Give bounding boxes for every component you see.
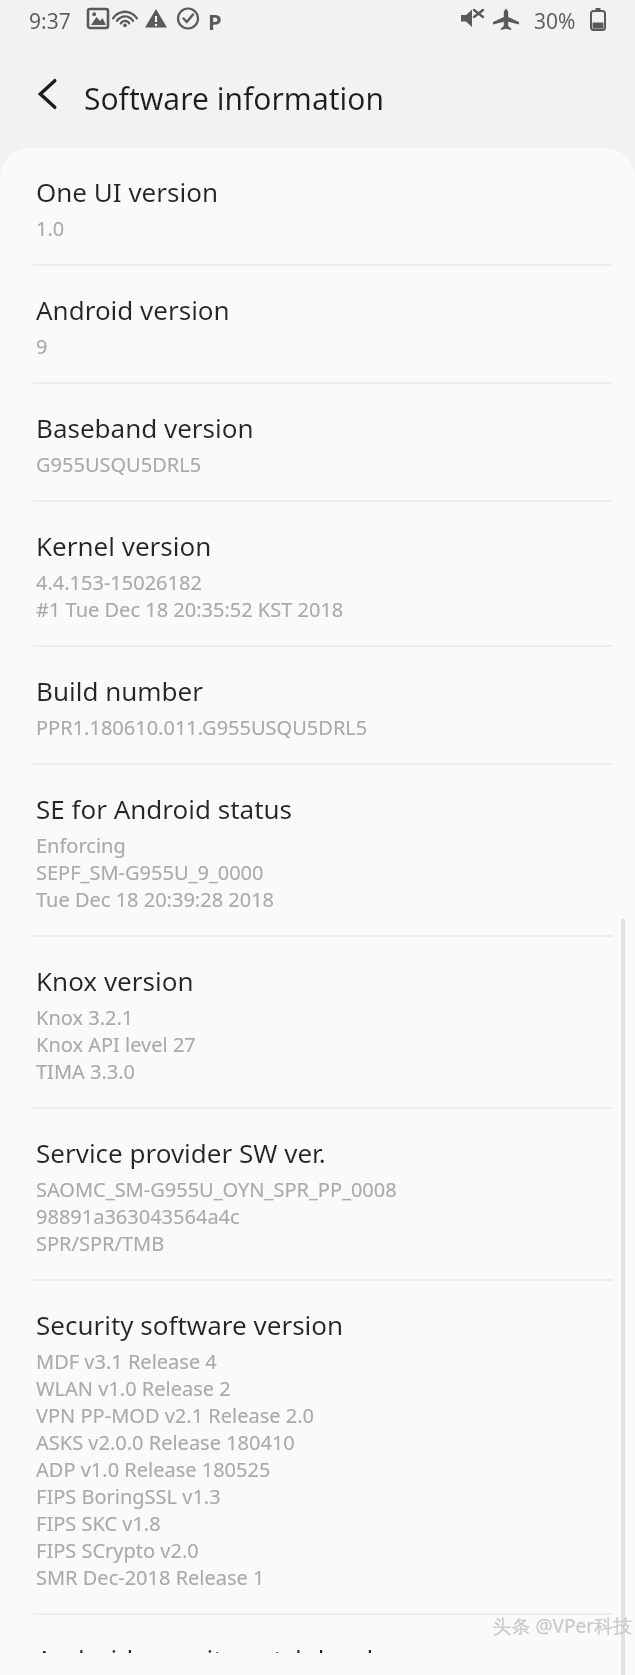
staticText: Baseband version	[36, 410, 254, 445]
staticText: TIMA 3.3.0	[36, 1058, 136, 1085]
staticText: 头条 @VPer科技	[492, 1613, 632, 1639]
staticText: Tue Dec 18 20:39:28 2018	[36, 886, 275, 913]
staticText: SPR/SPR/TMB	[36, 1230, 165, 1257]
staticText: FIPS SKC v1.8	[36, 1510, 161, 1537]
staticText: 9:37	[29, 7, 71, 36]
button[interactable]: Back	[20, 65, 78, 123]
button[interactable]: Kernel version	[0, 502, 635, 645]
staticText: 30%	[534, 7, 576, 36]
button[interactable]: Baseband version	[0, 384, 635, 500]
staticText: SAOMC_SM-G955U_OYN_SPR_PP_0008	[36, 1176, 397, 1203]
staticText: Knox API level 27	[36, 1031, 196, 1058]
staticText: One UI version	[36, 174, 218, 209]
button[interactable]: Build number	[0, 647, 635, 763]
staticText: PPR1.180610.011.G955USQU5DRL5	[36, 714, 368, 741]
staticText: Kernel version	[36, 528, 212, 563]
staticText: P	[208, 6, 222, 36]
staticText: WLAN v1.0 Release 2	[36, 1375, 231, 1402]
button[interactable]: SE for Android status	[0, 765, 635, 935]
staticText: ADP v1.0 Release 180525	[36, 1456, 271, 1483]
button[interactable]: Knox version	[0, 937, 635, 1107]
staticText: 4.4.153-15026182	[36, 569, 202, 596]
staticText: ASKS v2.0.0 Release 180410	[36, 1429, 295, 1456]
staticText: SE for Android status	[36, 791, 293, 826]
staticText: Android security patch level	[36, 1641, 374, 1653]
staticText: G955USQU5DRL5	[36, 451, 202, 478]
button[interactable]: Android security patch level	[0, 1615, 635, 1675]
button[interactable]: Security software version	[0, 1281, 635, 1613]
staticText: 9	[36, 333, 48, 360]
staticText: FIPS SCrypto v2.0	[36, 1537, 199, 1564]
staticText: Security software version	[36, 1307, 344, 1342]
staticText: Build number	[36, 673, 203, 708]
staticText: Enforcing	[36, 832, 126, 859]
button[interactable]: One UI version	[0, 148, 635, 264]
staticText: SMR Dec-2018 Release 1	[36, 1564, 265, 1591]
staticText: FIPS BoringSSL v1.3	[36, 1483, 221, 1510]
staticText: Service provider SW ver.	[36, 1135, 326, 1170]
staticText: SEPF_SM-G955U_9_0000	[36, 859, 264, 886]
staticText: Knox 3.2.1	[36, 1004, 134, 1031]
staticText: Knox version	[36, 963, 194, 998]
staticText: 1.0	[36, 215, 65, 242]
staticText: MDF v3.1 Release 4	[36, 1348, 217, 1375]
button[interactable]: Android version	[0, 266, 635, 382]
staticText: Android version	[36, 292, 230, 327]
staticText: 98891a363043564a4c	[36, 1203, 240, 1230]
staticText: Software information	[84, 78, 384, 119]
button[interactable]: Service provider SW ver.	[0, 1109, 635, 1279]
staticText: #1 Tue Dec 18 20:35:52 KST 2018	[36, 596, 344, 623]
staticText: VPN PP-MOD v2.1 Release 2.0	[36, 1402, 314, 1429]
